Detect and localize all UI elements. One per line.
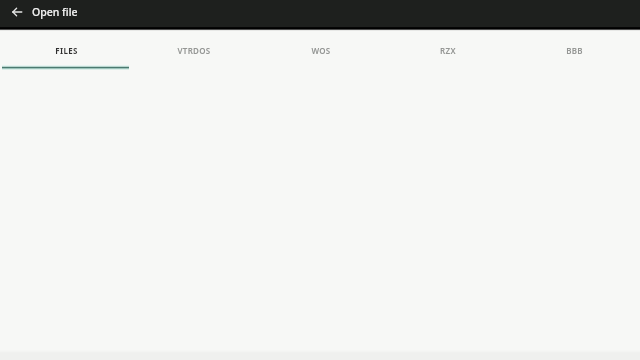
button[interactable]: RZX [384,30,511,68]
staticText: VTRDOS [177,45,211,56]
button[interactable]: VTRDOS [130,30,257,68]
button[interactable]: Navigate up [8,3,25,20]
staticText: RZX [440,45,456,56]
staticText: FILES [55,45,78,56]
staticText: WOS [311,45,331,56]
button[interactable]: BBB [511,30,638,68]
staticText: Open file [32,5,78,19]
staticText: BBB [566,45,583,56]
button[interactable]: FILES [3,30,130,68]
button[interactable]: WOS [257,30,384,68]
